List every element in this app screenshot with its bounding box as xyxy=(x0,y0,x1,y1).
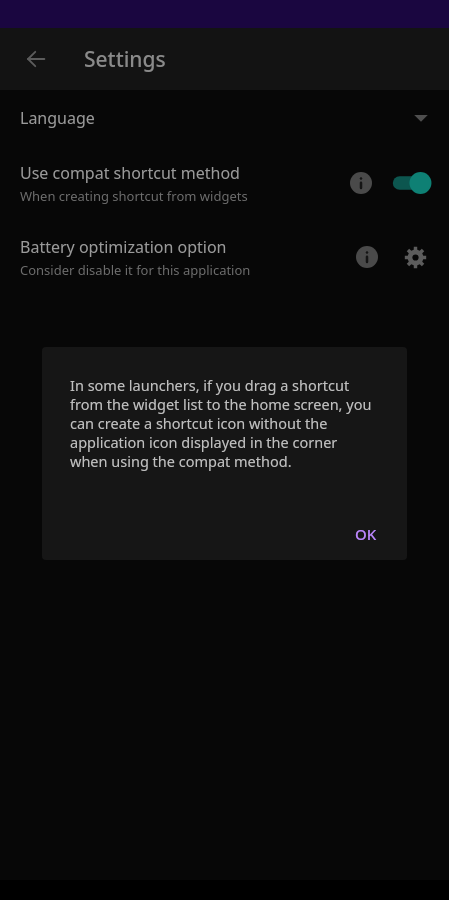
button[interactable]: Toggle compat shortcut method xyxy=(389,163,435,203)
staticText: Consider disable it for this application xyxy=(20,261,251,279)
button[interactable]: Information xyxy=(341,163,381,203)
staticText: Use compat shortcut method xyxy=(20,162,240,184)
staticText: When creating shortcut from widgets xyxy=(20,187,248,205)
button[interactable]: OK xyxy=(341,516,391,552)
staticText: Language xyxy=(20,107,95,129)
button[interactable]: Battery optimization settings xyxy=(395,237,435,277)
button[interactable]: Use compat shortcut method xyxy=(0,146,449,220)
button[interactable]: Language xyxy=(0,90,449,146)
button[interactable]: Battery optimization option xyxy=(0,220,449,294)
staticText: OK xyxy=(355,524,377,544)
staticText: Settings xyxy=(84,45,166,74)
staticText: In some launchers, if you drag a shortcu… xyxy=(70,375,376,471)
button[interactable]: Information xyxy=(347,237,387,277)
button[interactable]: Back xyxy=(12,35,60,83)
staticText: Battery optimization option xyxy=(20,236,227,258)
